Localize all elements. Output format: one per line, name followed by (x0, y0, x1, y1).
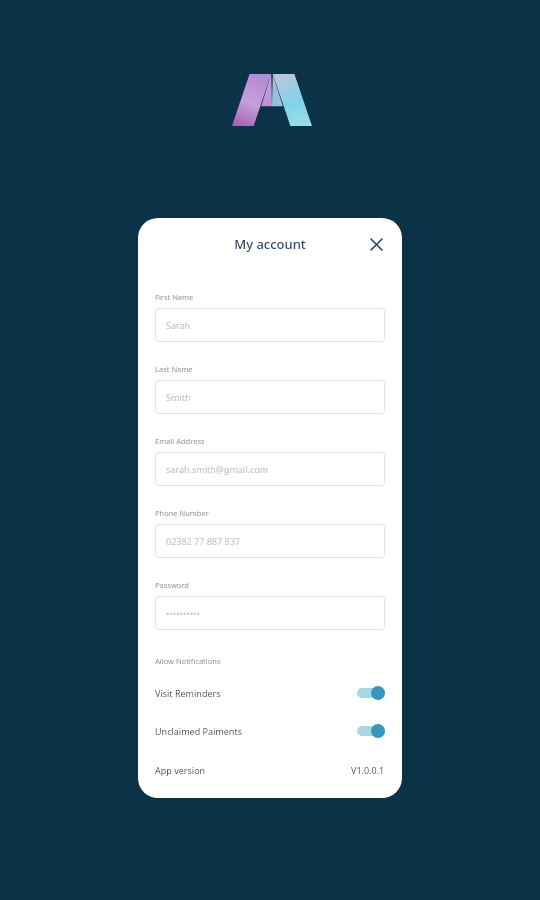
staticText: First Name (155, 292, 194, 302)
staticText: sarah.smith@gmail.com (166, 463, 269, 475)
button[interactable]: Visit Reminders (155, 682, 385, 704)
staticText: •••••••••• (166, 607, 200, 619)
button[interactable]: 02382 77 887 837 (155, 524, 385, 558)
staticText: Sarah (166, 319, 191, 331)
staticText: App version (155, 764, 206, 776)
staticText: Password (155, 580, 189, 590)
staticText: Last Name (155, 364, 193, 374)
staticText: Email Address (155, 436, 205, 446)
staticText: Smith (166, 391, 191, 403)
staticText: Allow Notifications (155, 656, 221, 666)
staticText: Visit Reminders (155, 687, 221, 699)
staticText: Unclaimed Paiments (155, 725, 242, 737)
button[interactable]: Sarah (155, 308, 385, 342)
staticText: Phone Number (155, 508, 209, 518)
staticText: V1.0.0.1 (351, 764, 385, 776)
button[interactable]: Unclaimed Paiments (155, 720, 385, 742)
staticText: 02382 77 887 837 (166, 535, 240, 547)
button[interactable]: Smith (155, 380, 385, 414)
staticText: My account (234, 235, 306, 253)
button[interactable]: Close (362, 230, 390, 258)
button[interactable]: •••••••••• (155, 596, 385, 630)
button[interactable]: sarah.smith@gmail.com (155, 452, 385, 486)
